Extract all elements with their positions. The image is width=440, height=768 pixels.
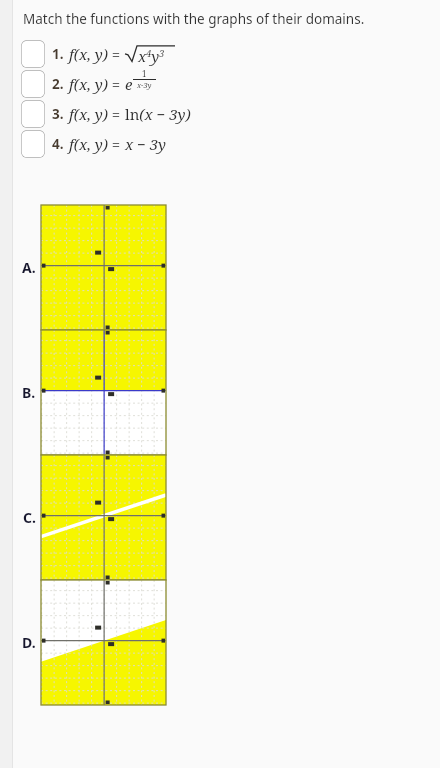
other: Answer box 3 bbox=[21, 100, 45, 128]
staticText: x−3y bbox=[137, 80, 152, 90]
staticText: Match the functions with the graphs of t… bbox=[23, 10, 365, 28]
button[interactable]: Graph A. bbox=[41, 205, 166, 330]
staticText: A. bbox=[22, 258, 36, 277]
button[interactable]: Answer box 2 bbox=[21, 69, 156, 99]
staticText: 4. bbox=[52, 135, 64, 153]
staticText: f(x, y) = bbox=[69, 104, 125, 124]
other: Answer box 2 bbox=[21, 70, 45, 98]
staticText: C. bbox=[23, 508, 36, 527]
button[interactable]: Answer box 3 bbox=[21, 99, 191, 129]
staticText: f(x, y) = bbox=[69, 44, 125, 64]
staticText: 3. bbox=[52, 105, 64, 123]
staticText: 2. bbox=[52, 75, 64, 93]
button[interactable]: Graph D. bbox=[41, 580, 166, 705]
button[interactable]: Graph C. bbox=[41, 455, 166, 580]
staticText: 1 bbox=[142, 68, 147, 79]
other: Answer box 1 bbox=[21, 40, 45, 68]
staticText: 1. bbox=[52, 45, 64, 63]
staticText: f(x, y) = bbox=[69, 74, 125, 94]
staticText: x − 3y bbox=[125, 134, 166, 154]
other: Answer box 4 bbox=[21, 130, 45, 158]
button[interactable]: Graph B. bbox=[41, 330, 166, 455]
staticText: f(x, y) = bbox=[69, 134, 125, 154]
staticText: D. bbox=[22, 633, 36, 652]
button[interactable]: Answer box 4 bbox=[21, 129, 166, 159]
staticText: x4y3 bbox=[138, 46, 165, 66]
staticText: B. bbox=[22, 383, 36, 402]
staticText: ln(x − 3y) bbox=[125, 104, 191, 124]
staticText: e bbox=[125, 74, 133, 94]
button[interactable]: Answer box 1 bbox=[21, 39, 175, 69]
